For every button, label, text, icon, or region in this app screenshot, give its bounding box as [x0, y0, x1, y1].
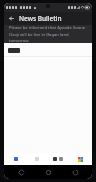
staticText: News Bulletin — [19, 14, 62, 23]
button[interactable]: Search — [29, 153, 45, 165]
button[interactable]: Home — [38, 165, 58, 179]
button[interactable] — [8, 48, 20, 53]
button[interactable]: Recents — [65, 165, 85, 179]
button[interactable]: Back — [11, 165, 31, 179]
staticText: Please be informed that Ayoade Soone Oso… — [9, 25, 87, 43]
button[interactable]: Apps — [72, 153, 88, 165]
button[interactable]: Feed — [49, 153, 67, 165]
button[interactable]: Home — [8, 153, 24, 165]
button[interactable]: Back — [7, 14, 16, 23]
